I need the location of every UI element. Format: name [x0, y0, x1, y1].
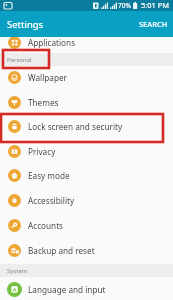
button[interactable]: Themes: [0, 90, 173, 114]
staticText: Lock screen and security: [28, 121, 123, 132]
button[interactable]: Easy mode: [0, 163, 173, 187]
button[interactable]: Wallpaper: [0, 65, 173, 89]
staticText: Easy mode: [28, 170, 70, 181]
button[interactable]: Accounts: [0, 213, 173, 237]
staticText: Settings: [7, 18, 44, 31]
staticText: Accounts: [28, 220, 64, 231]
button[interactable]: SEARCH: [137, 16, 170, 32]
staticText: 5:01 PM: [141, 0, 170, 10]
staticText: 70%: [118, 1, 131, 10]
staticText: SEARCH: [139, 19, 168, 29]
staticText: Personal: [7, 56, 32, 64]
staticText: Accessibility: [28, 195, 75, 206]
staticText: Applications: [28, 37, 76, 48]
staticText: System: [7, 267, 28, 275]
staticText: Themes: [28, 97, 59, 108]
button[interactable]: Lock screen and security: [0, 114, 173, 138]
staticText: Backup and reset: [28, 245, 95, 256]
button[interactable]: Language and input: [0, 277, 173, 300]
button[interactable]: Applications: [0, 30, 173, 54]
button[interactable]: Privacy: [0, 139, 173, 163]
staticText: Language and input: [28, 284, 106, 295]
staticText: Wallpaper: [28, 72, 67, 83]
button[interactable]: Backup and reset: [0, 238, 173, 262]
button[interactable]: Accessibility: [0, 188, 173, 212]
staticText: Privacy: [28, 146, 56, 157]
